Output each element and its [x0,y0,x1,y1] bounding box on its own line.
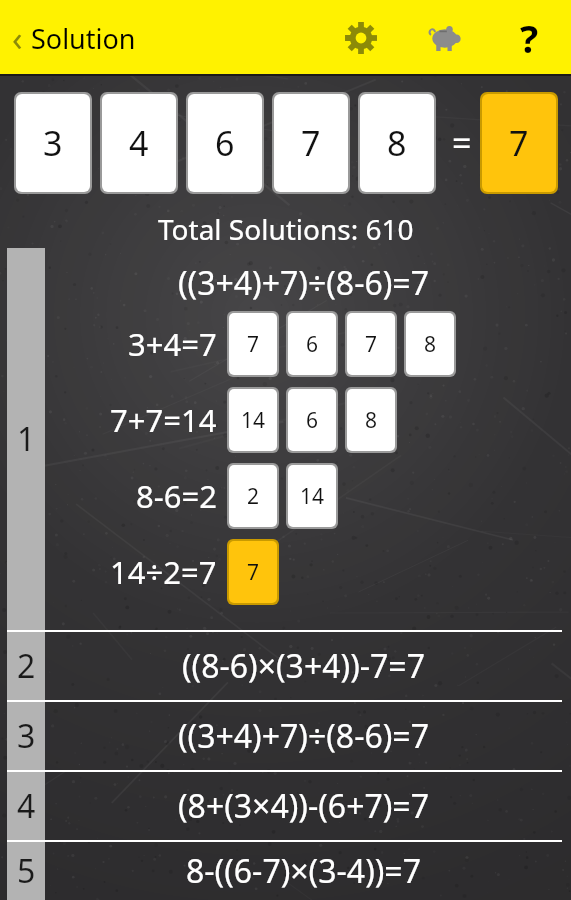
button[interactable]: 8 [406,313,454,375]
button[interactable]: 7 [229,541,277,603]
staticText: (8+(3×4))-(6+7)=7 [178,784,429,828]
staticText: = [452,120,472,166]
button[interactable]: 7 [229,313,277,375]
button[interactable]: 3 [16,94,90,192]
staticText: 8-((6-7)×(3-4))=7 [186,849,421,893]
staticText: 6 [215,120,235,166]
staticText: 7 [365,330,378,359]
staticText: 1 [17,417,36,461]
button[interactable]: 6 [288,389,336,451]
staticText: 2 [17,644,36,688]
staticText: 3 [17,714,36,758]
staticText: 8-6=2 [136,475,217,517]
staticText: 4 [17,784,36,828]
button[interactable]: 7 [274,94,348,192]
button[interactable]: Coins [417,10,473,66]
staticText: ((3+4)+7)÷(8-6)=7 [178,261,429,305]
staticText: 2 [247,482,260,511]
staticText: 4 [129,120,149,166]
button[interactable]: 5 [0,842,571,900]
staticText: ‹ [12,15,23,61]
button[interactable]: 3 [0,702,571,770]
button[interactable]: 4 [102,94,176,192]
button[interactable]: 1 [0,248,571,630]
button[interactable]: Help [501,10,557,66]
staticText: 8 [387,120,407,166]
staticText: 7+7=14 [110,399,217,441]
staticText: 7 [301,120,321,166]
staticText: 6 [306,330,319,359]
staticText: 3+4=7 [128,323,217,365]
button[interactable]: 8 [347,389,395,451]
button[interactable]: 7 [347,313,395,375]
button[interactable]: 14 [229,389,277,451]
staticText: ((8-6)×(3+4))-7=7 [182,644,425,688]
staticText: Solution [31,20,136,57]
button[interactable]: Settings [333,10,389,66]
staticText: 7 [509,120,529,166]
staticText: 3 [43,120,63,166]
button[interactable]: 8 [360,94,434,192]
staticText: 14 [241,406,266,435]
staticText: 8 [424,330,437,359]
button[interactable]: 7 [482,94,556,192]
staticText: 5 [17,849,36,893]
button[interactable]: ‹ [6,9,142,67]
button[interactable]: 14 [288,465,336,527]
staticText: 8 [365,406,378,435]
button[interactable]: 2 [229,465,277,527]
staticText: 14÷2=7 [110,551,217,593]
staticText: 7 [247,330,260,359]
staticText: 7 [247,558,260,587]
staticText: 6 [306,406,319,435]
button[interactable]: 6 [288,313,336,375]
button[interactable]: 6 [188,94,262,192]
button[interactable]: 2 [0,632,571,700]
button[interactable]: 4 [0,772,571,840]
staticText: ((3+4)+7)÷(8-6)=7 [178,714,429,758]
staticText: 14 [300,482,325,511]
staticText: Total Solutions: 610 [158,210,414,248]
staticText: ? [520,12,539,64]
